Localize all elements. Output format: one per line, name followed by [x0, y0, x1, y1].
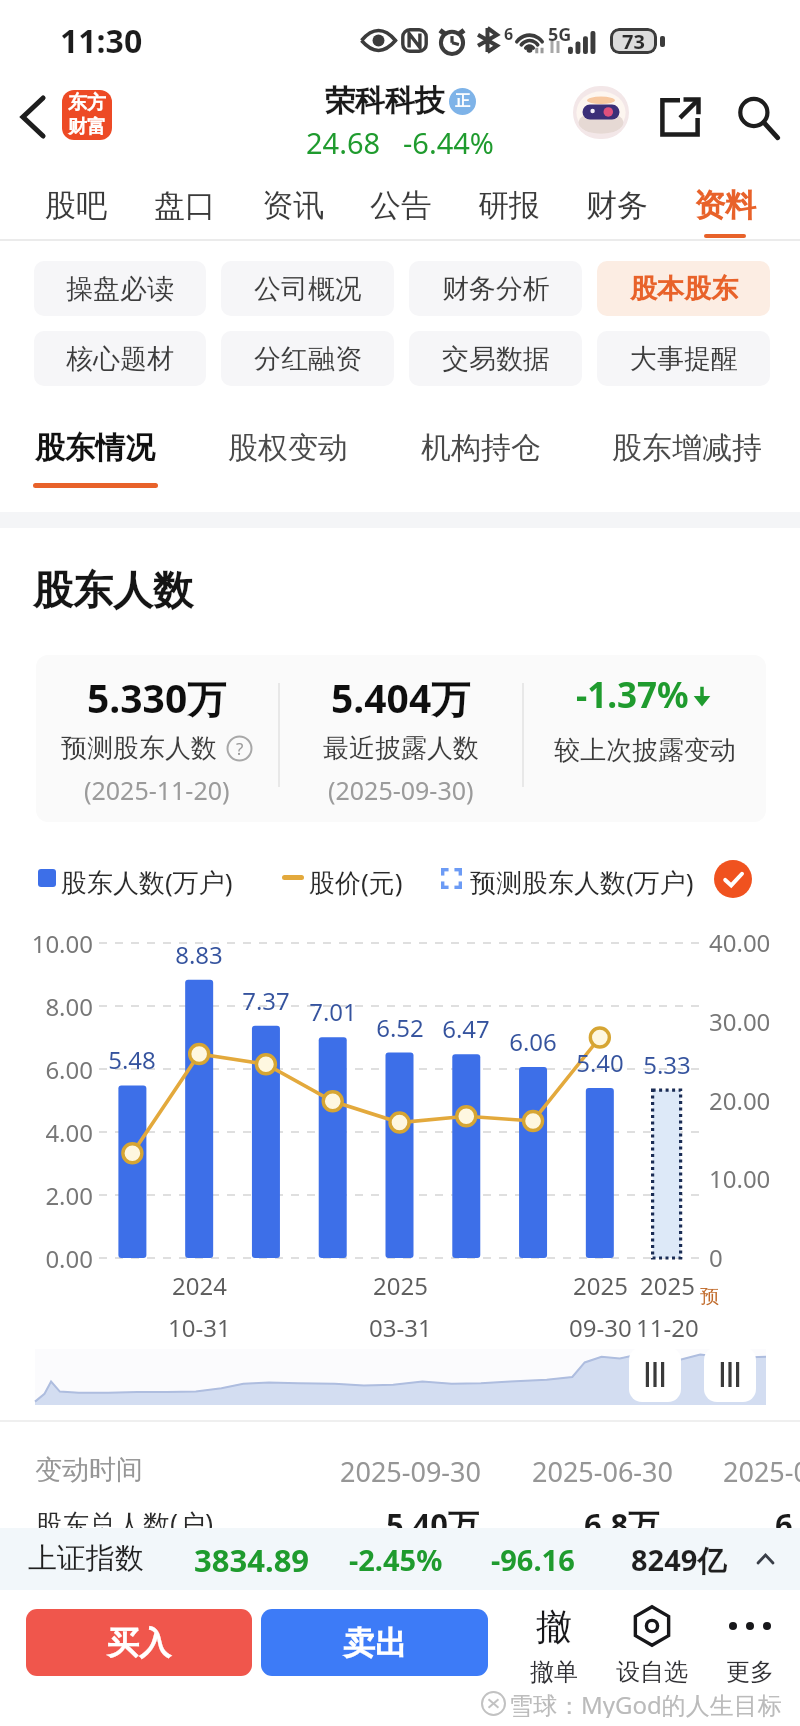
- staticText: 预测股东人数: [61, 732, 217, 765]
- staticText: 研报: [478, 186, 540, 225]
- staticText: 公告: [370, 186, 432, 225]
- staticText: 机构持仓: [421, 429, 541, 467]
- staticText: ?: [236, 737, 244, 760]
- button[interactable]: 撤: [506, 1601, 602, 1687]
- staticText: 分红融资: [254, 342, 362, 376]
- staticText: 大事提醒: [630, 342, 738, 376]
- staticText: 买入: [107, 1623, 171, 1663]
- button[interactable]: 股吧: [21, 164, 130, 241]
- staticText: 设自选: [616, 1657, 688, 1687]
- button[interactable]: 研报: [455, 164, 563, 241]
- button[interactable]: Search: [732, 92, 784, 144]
- button[interactable]: 交易数据: [409, 331, 582, 386]
- staticText: 5.404万: [331, 671, 471, 724]
- staticText: 8.00: [14, 990, 93, 1023]
- button[interactable]: Back: [10, 94, 56, 140]
- button[interactable]: Expand index panel: [747, 1541, 783, 1577]
- staticText: 上证指数: [28, 1540, 144, 1577]
- button[interactable]: East Money: [62, 90, 112, 140]
- staticText: 股东增减持: [612, 429, 762, 467]
- button[interactable]: 大事提醒: [597, 331, 770, 386]
- staticText: 2025-09-30: [340, 1453, 481, 1490]
- staticText: 10-31: [168, 1311, 231, 1344]
- button[interactable]: 财务分析: [409, 261, 582, 316]
- staticText: 2025: [573, 1269, 628, 1302]
- button[interactable]: 买入: [26, 1609, 252, 1676]
- button[interactable]: 卖出: [261, 1609, 488, 1676]
- staticText: 财务分析: [442, 272, 550, 306]
- button[interactable]: 公司概况: [221, 261, 394, 316]
- staticText: 5.40: [555, 1046, 645, 1079]
- button[interactable]: Range handle: [629, 1347, 681, 1402]
- button[interactable]: 设自选: [604, 1601, 700, 1687]
- button[interactable]: 公告: [347, 164, 455, 241]
- button[interactable]: 上证指数: [0, 1528, 800, 1590]
- staticText: 6.00: [14, 1053, 93, 1086]
- staticText: 11:30: [60, 19, 143, 63]
- button[interactable]: Confirm: [714, 860, 752, 898]
- staticText: 0: [709, 1241, 723, 1274]
- staticText: 20.00: [709, 1084, 771, 1117]
- button[interactable]: 机构持仓: [391, 418, 571, 502]
- staticText: 交易数据: [442, 342, 550, 376]
- button[interactable]: 操盘必读: [34, 261, 206, 316]
- staticText: -6.44%: [403, 123, 494, 162]
- staticText: 荣科科技: [325, 82, 445, 120]
- staticText: -96.16: [491, 1540, 575, 1579]
- staticText: 预: [700, 1285, 719, 1309]
- staticText: 24.68: [306, 123, 381, 162]
- staticText: 资料: [694, 186, 756, 225]
- staticText: 核心题材: [66, 342, 174, 376]
- button[interactable]: 股东增减持: [597, 418, 777, 502]
- staticText: 73: [622, 28, 645, 54]
- staticText: 财富: [68, 115, 106, 139]
- button[interactable]: 股权变动: [198, 418, 378, 502]
- staticText: 11-20: [636, 1311, 699, 1344]
- staticText: 6.06: [488, 1025, 578, 1058]
- staticText: 03-31: [369, 1311, 432, 1344]
- button[interactable]: Range handle: [704, 1347, 756, 1402]
- staticText: 8.83: [154, 938, 244, 971]
- staticText: 5G: [548, 22, 572, 47]
- staticText: 2025-0: [723, 1453, 800, 1490]
- staticText: 股东人数: [33, 565, 193, 615]
- staticText: 2025: [640, 1269, 695, 1302]
- staticText: 8249亿: [631, 1540, 727, 1580]
- staticText: -2.45%: [349, 1540, 443, 1579]
- staticText: (2025-09-30): [328, 773, 474, 807]
- button[interactable]: 盘口: [130, 164, 239, 241]
- button[interactable]: 股东情况: [5, 418, 185, 502]
- button[interactable]: 分红融资: [221, 331, 394, 386]
- staticText: 股价(元): [309, 864, 403, 900]
- staticText: 7.37: [221, 984, 311, 1017]
- staticText: 卖出: [343, 1623, 407, 1663]
- staticText: 2025: [373, 1269, 428, 1302]
- staticText: 东方: [68, 91, 106, 115]
- staticText: 5.33: [622, 1048, 712, 1081]
- button[interactable]: 更多: [702, 1601, 798, 1687]
- button[interactable]: Assistant: [573, 86, 629, 139]
- staticText: 正: [455, 92, 470, 111]
- staticText: 预测股东人数(万户): [470, 864, 694, 900]
- staticText: 较上次披露变动: [554, 734, 736, 767]
- button[interactable]: 资料: [671, 164, 779, 241]
- staticText: 10.00: [14, 927, 93, 960]
- staticText: 资讯: [262, 186, 324, 225]
- button[interactable]: 股本股东: [597, 261, 770, 316]
- staticText: 更多: [726, 1657, 774, 1687]
- staticText: 2025-06-30: [532, 1453, 673, 1490]
- button[interactable]: 财务: [563, 164, 671, 241]
- staticText: 公司概况: [254, 272, 362, 306]
- staticText: 股东总人数(户): [35, 1505, 214, 1542]
- staticText: 6: [504, 23, 514, 45]
- staticText: 6.8万: [584, 1503, 660, 1545]
- staticText: 3834.89: [194, 1539, 310, 1581]
- staticText: 股本股东: [630, 272, 738, 306]
- staticText: 40.00: [709, 926, 771, 959]
- button[interactable]: 核心题材: [34, 331, 206, 386]
- staticText: 2.00: [14, 1179, 93, 1212]
- button[interactable]: Share: [655, 92, 705, 142]
- button[interactable]: 资讯: [239, 164, 347, 241]
- staticText: 0.00: [14, 1242, 93, 1275]
- staticText: 6.52: [355, 1011, 445, 1044]
